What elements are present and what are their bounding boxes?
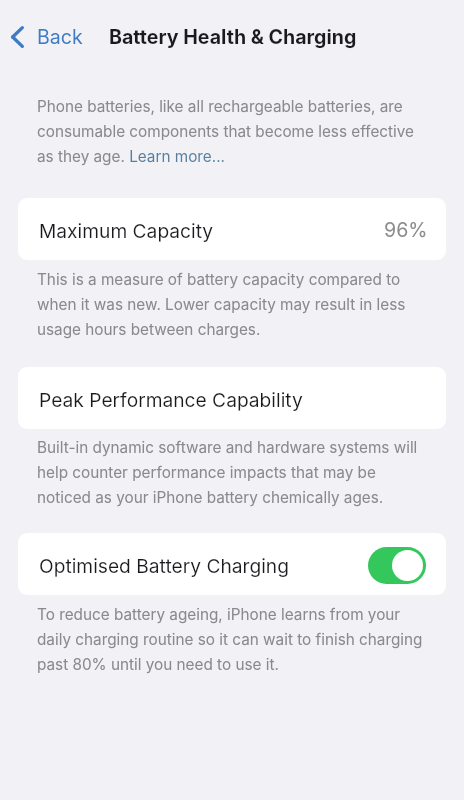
- button[interactable]: Learn more: [129, 147, 224, 166]
- other: Back: [11, 26, 24, 48]
- staticText: 96%: [384, 218, 428, 242]
- button[interactable]: Back: [3, 17, 91, 57]
- staticText: To reduce battery ageing, iPhone learns …: [37, 605, 432, 674]
- staticText: Battery Health & Charging: [109, 25, 357, 49]
- staticText: Back: [37, 25, 83, 49]
- staticText: Optimised Battery Charging: [39, 554, 289, 577]
- staticText: Phone batteries, like all rechargeable b…: [37, 97, 432, 166]
- button[interactable]: Optimised Battery Charging: [18, 533, 446, 595]
- staticText: Built-in dynamic software and hardware s…: [37, 438, 432, 507]
- button[interactable]: Maximum Capacity: [18, 198, 446, 260]
- staticText: Maximum Capacity: [39, 219, 214, 242]
- button[interactable]: Optimised Battery Charging toggle: [368, 547, 426, 584]
- button[interactable]: Peak Performance Capability: [18, 367, 446, 429]
- staticText: This is a measure of battery capacity co…: [37, 270, 432, 339]
- staticText: Peak Performance Capability: [39, 388, 303, 411]
